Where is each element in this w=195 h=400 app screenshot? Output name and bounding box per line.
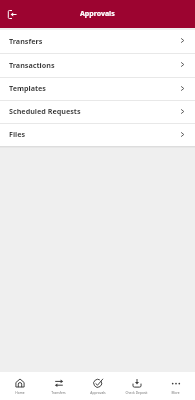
button[interactable]: Check Deposit [117, 372, 156, 400]
button[interactable]: Log out [3, 5, 21, 23]
staticText: Transfers [51, 390, 66, 394]
staticText: More [171, 390, 180, 394]
button[interactable]: Scheduled Requests [0, 101, 195, 123]
button[interactable]: Transfers [0, 30, 195, 53]
button[interactable]: Templates [0, 78, 195, 100]
button[interactable]: Approvals [78, 372, 117, 400]
staticText: Transactions [9, 60, 55, 70]
button[interactable]: Transactions [0, 54, 195, 77]
button[interactable]: More [156, 372, 195, 400]
staticText: Files [9, 129, 26, 139]
staticText: Home [15, 390, 25, 394]
staticText: Approvals [90, 390, 106, 394]
button[interactable]: Files [0, 124, 195, 146]
staticText: Check Deposit [125, 390, 148, 394]
button[interactable]: Home [0, 372, 39, 400]
staticText: Approvals [80, 9, 115, 19]
staticText: Templates [9, 83, 46, 93]
button[interactable]: Transfers [39, 372, 78, 400]
staticText: Transfers [9, 36, 43, 46]
staticText: Scheduled Requests [9, 106, 81, 116]
